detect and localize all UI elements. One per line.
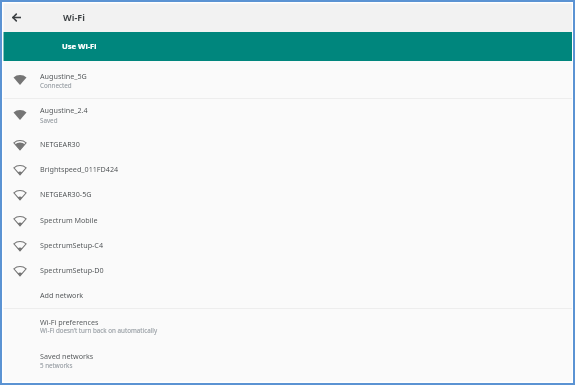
button[interactable]: NETGEAR30-5G — [2, 182, 573, 207]
staticText: Connected — [40, 81, 72, 90]
button[interactable]: Brightspeed_011FD424 — [2, 157, 573, 182]
staticText: Wi-Fi doesn’t turn back on automatically — [40, 326, 158, 335]
button[interactable]: Saved networks — [2, 344, 573, 379]
staticText: Spectrum Mobile — [40, 215, 98, 225]
staticText: NETGEAR30 — [40, 139, 80, 149]
button[interactable]: Add network — [2, 284, 573, 308]
button[interactable]: Back — [7, 2, 26, 32]
button[interactable]: Spectrum Mobile — [2, 208, 573, 233]
staticText: Use Wi-Fi — [62, 41, 97, 51]
staticText: Wi-Fi preferences — [40, 317, 99, 327]
staticText: SpectrumSetup-D0 — [40, 265, 104, 275]
button[interactable]: Wi-Fi preferences — [2, 309, 573, 344]
staticText: Brightspeed_011FD424 — [40, 164, 119, 174]
button[interactable]: NETGEAR30 — [2, 132, 573, 157]
button[interactable]: SpectrumSetup-D0 — [2, 258, 573, 283]
staticText: SpectrumSetup-C4 — [40, 240, 104, 250]
staticText: Add network — [40, 290, 84, 300]
staticText: Saved networks — [40, 351, 94, 361]
staticText: Wi-Fi — [63, 11, 85, 23]
button[interactable]: Augustine_2.4 — [2, 99, 573, 132]
staticText: Augustine_2.4 — [40, 105, 88, 115]
button[interactable]: Augustine_5G — [2, 61, 573, 98]
staticText: NETGEAR30-5G — [40, 189, 92, 199]
staticText: 5 networks — [40, 361, 73, 370]
button[interactable]: SpectrumSetup-C4 — [2, 233, 573, 258]
staticText: Augustine_5G — [40, 71, 87, 81]
button[interactable]: Use Wi-Fi — [2, 32, 573, 61]
staticText: Saved — [40, 116, 58, 125]
